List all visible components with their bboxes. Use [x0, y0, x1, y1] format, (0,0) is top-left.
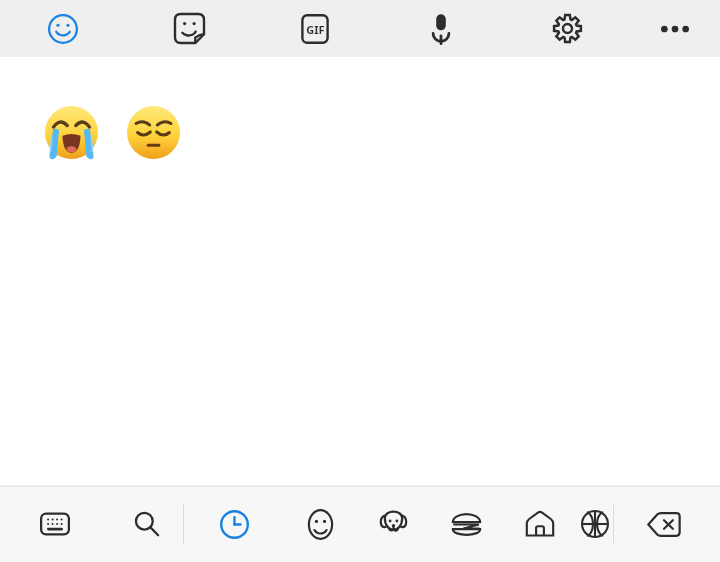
button[interactable]: Backspace [614, 486, 714, 562]
button[interactable]: Smileys [284, 486, 357, 562]
button[interactable]: Keyboard [0, 486, 110, 562]
button[interactable]: Travel and places [503, 486, 576, 562]
button[interactable]: Stickers [126, 0, 252, 57]
button[interactable]: Settings [504, 0, 630, 57]
button[interactable]: Loudly crying face [40, 101, 102, 163]
button[interactable]: Food and drink [430, 486, 503, 562]
button[interactable]: GIF [252, 0, 378, 57]
button[interactable]: Activities [576, 486, 613, 562]
button[interactable]: Emoji [0, 0, 126, 57]
staticText: GIF [306, 22, 325, 37]
button[interactable]: Search emoji [110, 486, 183, 562]
button[interactable]: Pensive face [122, 101, 184, 163]
button[interactable]: More options [630, 0, 720, 57]
button[interactable]: Voice input [378, 0, 504, 57]
button[interactable]: Animals and nature [357, 486, 430, 562]
button[interactable]: Recently used [184, 486, 284, 562]
